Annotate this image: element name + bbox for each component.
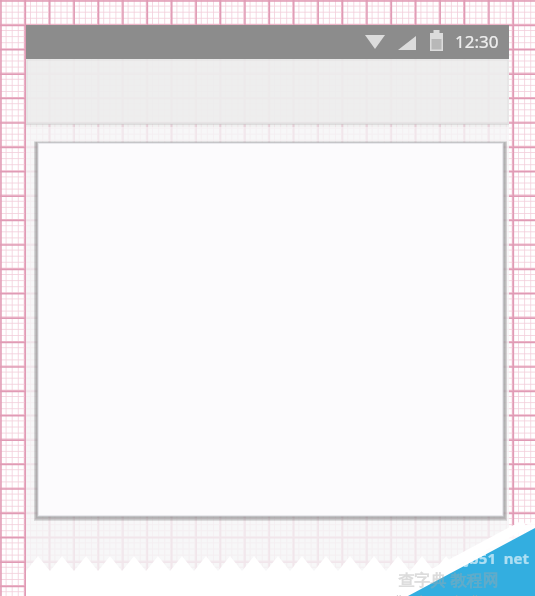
staticText: 查字典 教程网 — [398, 569, 499, 591]
other: Clock 12:30 — [455, 30, 515, 54]
staticText: jb51 net — [390, 548, 529, 568]
staticText: jiaocheng-chadian.com — [396, 591, 516, 596]
button[interactable]: App bar — [26, 59, 509, 125]
staticText: 12:30 — [455, 30, 499, 53]
